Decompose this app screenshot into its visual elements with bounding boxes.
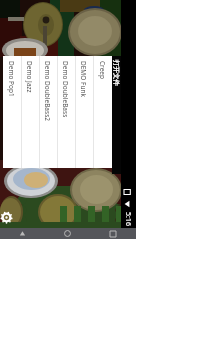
staticText: Demo DoubleBass2 [43, 61, 52, 121]
staticText: Demo Jazz [25, 61, 34, 93]
staticText: 5:16 [123, 212, 133, 226]
button[interactable]: Demo DoubleBass [57, 56, 75, 168]
button[interactable]: DEMO Funk [75, 56, 93, 168]
button[interactable]: Demo Jazz [21, 56, 39, 168]
button[interactable]: Recent apps [96, 228, 130, 239]
staticText: Demo Pop1 [7, 61, 16, 97]
button[interactable]: Demo DoubleBass2 [39, 56, 57, 168]
button[interactable]: Demo Pop1 [3, 56, 21, 168]
button[interactable]: Settings [0, 208, 16, 226]
staticText: Demo DoubleBass [61, 61, 70, 118]
button[interactable]: Home [51, 228, 85, 239]
staticText: DEMO Funk [79, 61, 88, 97]
button[interactable]: Back [6, 228, 40, 239]
staticText: 打开文件 [112, 60, 120, 86]
staticText: Creep [98, 61, 107, 79]
button[interactable]: Creep [93, 56, 112, 168]
